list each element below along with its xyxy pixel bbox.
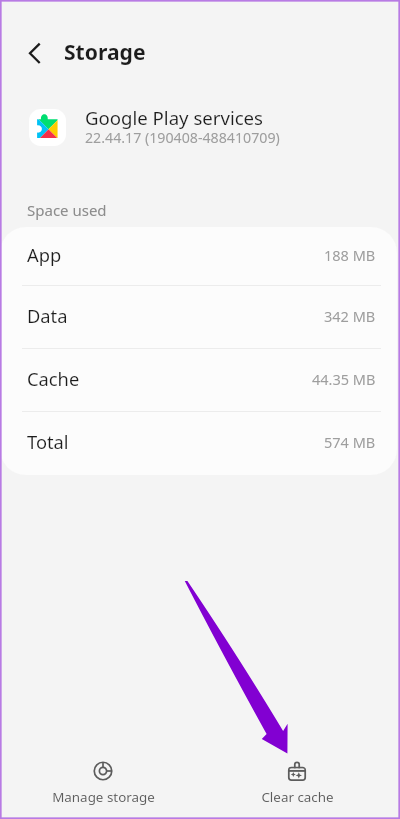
staticText: 574 MB [324, 432, 376, 452]
staticText: 188 MB [324, 245, 376, 265]
staticText: App [27, 242, 62, 267]
staticText: Data [27, 303, 68, 328]
staticText: Manage storage [52, 788, 155, 806]
button[interactable]: Total [0, 412, 397, 475]
staticText: Storage [64, 37, 146, 66]
button[interactable]: Data [0, 286, 397, 349]
button[interactable]: Back [24, 38, 46, 68]
staticText: 44.35 MB [312, 369, 376, 389]
staticText: Space used [27, 200, 107, 220]
staticText: 22.44.17 (190408-488410709) [85, 128, 280, 147]
staticText: Total [27, 429, 69, 454]
button[interactable]: Clear cache [207, 751, 387, 811]
button[interactable]: App [0, 227, 397, 286]
staticText: Clear cache [261, 788, 334, 806]
staticText: Google Play services [85, 105, 264, 130]
staticText: Cache [27, 366, 80, 391]
staticText: 342 MB [324, 306, 376, 326]
button[interactable]: Cache [0, 349, 397, 412]
button[interactable]: Manage storage [13, 751, 193, 811]
